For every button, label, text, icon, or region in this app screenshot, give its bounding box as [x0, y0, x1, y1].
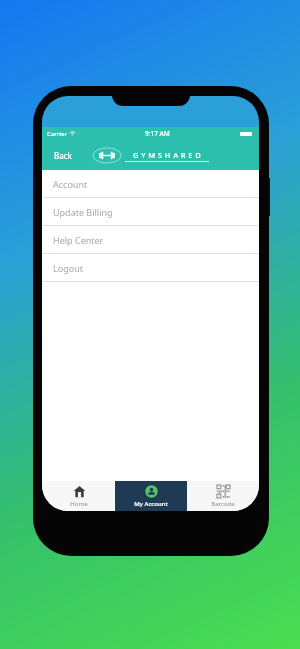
button[interactable]: Home — [42, 481, 115, 511]
button[interactable]: My Account — [115, 481, 187, 511]
button[interactable]: Back — [50, 147, 76, 164]
staticText: Logout — [53, 262, 83, 274]
staticText: Back — [54, 150, 72, 161]
button[interactable]: Update Billing — [42, 198, 259, 226]
other: Home — [73, 485, 86, 498]
staticText: Home — [70, 500, 88, 508]
button[interactable]: Logout — [42, 254, 259, 282]
staticText: Account — [53, 178, 88, 190]
button[interactable]: Barcode — [187, 481, 259, 511]
staticText: Barcode — [211, 500, 235, 508]
staticText: Carrier — [47, 130, 67, 138]
staticText: Update Billing — [53, 206, 113, 218]
button[interactable]: Help Center — [42, 226, 259, 254]
button[interactable]: Account — [42, 170, 259, 198]
staticText: 9:17 AM — [145, 129, 170, 138]
staticText: Help Center — [53, 234, 104, 246]
other: My Account — [145, 485, 158, 498]
staticText: My Account — [134, 500, 168, 508]
other: Barcode — [217, 485, 230, 498]
staticText: G Y M S H A R E D — [133, 150, 202, 160]
